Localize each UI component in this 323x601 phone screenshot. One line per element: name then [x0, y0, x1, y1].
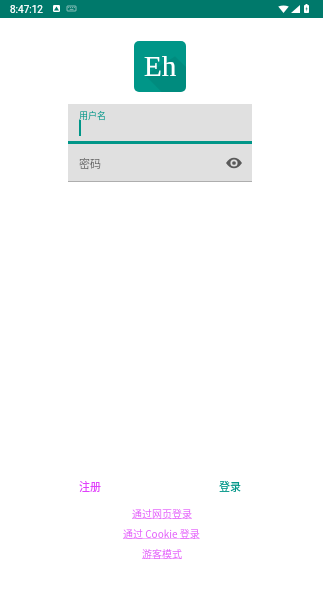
button[interactable]: 游客模式 — [142, 546, 182, 560]
button[interactable]: 注册 — [79, 478, 101, 494]
button[interactable]: 通过网页登录 — [132, 506, 192, 520]
staticText: 登录 — [219, 478, 241, 494]
staticText: 8:47:12 — [10, 4, 43, 16]
staticText: 用户名 — [79, 109, 107, 122]
button[interactable]: Show password — [226, 157, 242, 169]
staticText: 注册 — [79, 478, 101, 494]
button[interactable]: 用户名 — [68, 104, 252, 144]
staticText: Eh — [144, 50, 177, 82]
button[interactable]: 密码 — [68, 144, 252, 182]
button[interactable]: 登录 — [219, 478, 241, 494]
staticText: 密码 — [79, 155, 101, 171]
button[interactable]: 通过 Cookie 登录 — [123, 526, 200, 540]
